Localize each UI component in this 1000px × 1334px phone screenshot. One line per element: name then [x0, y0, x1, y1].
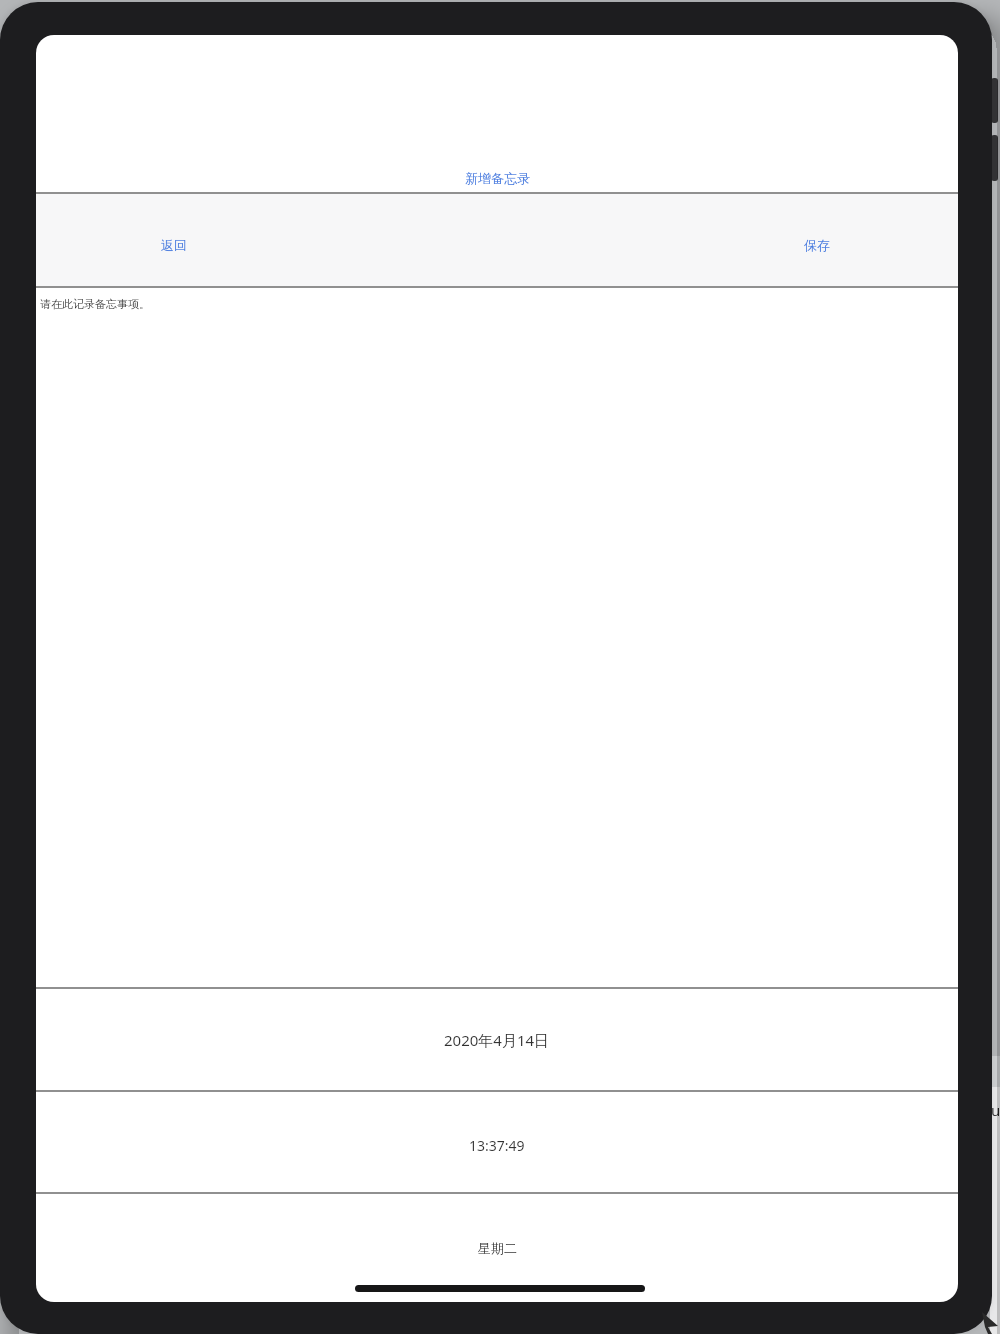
button[interactable]: 2020年4月14日 — [36, 989, 958, 1090]
button[interactable]: 13:37:49 — [36, 1092, 958, 1198]
staticText: u — [991, 1100, 1000, 1120]
staticText: 星期二 — [478, 1240, 517, 1256]
button[interactable]: 返回 — [124, 223, 224, 267]
staticText: 13:37:49 — [469, 1136, 525, 1155]
staticText: 保存 — [804, 237, 830, 253]
button[interactable]: 星期二 — [36, 1194, 958, 1302]
staticText: 返回 — [161, 237, 187, 253]
button[interactable]: 保存 — [767, 223, 867, 267]
staticText: 2020年4月14日 — [444, 1030, 550, 1050]
staticText: 请在此记录备忘事项。 — [40, 297, 150, 311]
staticText: 新增备忘录 — [465, 170, 530, 186]
